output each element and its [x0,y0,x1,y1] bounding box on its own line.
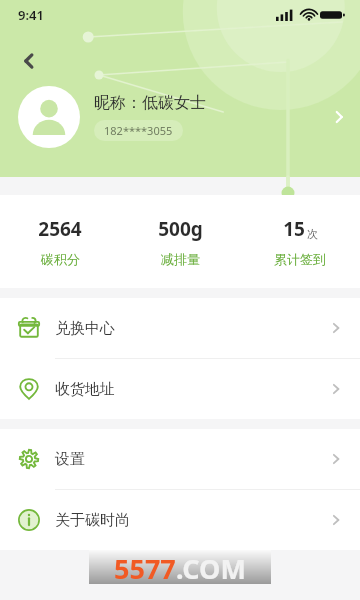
staticText: 关于碳时尚 [55,511,130,530]
staticText: 9:41 [18,6,44,24]
staticText: 减排量 [161,251,200,267]
button[interactable]: 2564 [0,216,120,267]
staticText: 累计签到 [274,251,326,267]
button[interactable]: 关于碳时尚 [0,490,360,550]
staticText: 182****3055 [104,123,173,138]
button[interactable]: 500g [120,216,240,267]
staticText: .COM [176,550,246,584]
staticText: 2564 [38,216,82,242]
button[interactable]: 15 [240,216,360,267]
button[interactable]: Back [12,44,46,78]
button[interactable]: 昵称：低碳女士 [0,86,360,148]
button[interactable]: 兑换中心 [0,298,360,358]
staticText: 5577 [114,550,176,584]
button[interactable]: 收货地址 [0,359,360,419]
button[interactable]: 设置 [0,429,360,489]
staticText: 设置 [55,450,85,469]
staticText: 500g [158,216,203,242]
staticText: 兑换中心 [55,319,115,338]
staticText: 15 [283,216,305,242]
staticText: 次 [307,227,318,241]
staticText: 收货地址 [55,380,115,399]
staticText: 昵称：低碳女士 [94,93,206,113]
staticText: 碳积分 [41,251,80,267]
